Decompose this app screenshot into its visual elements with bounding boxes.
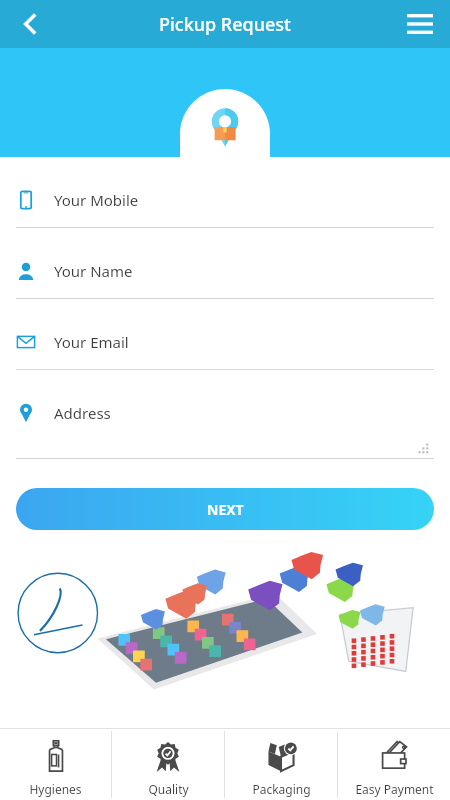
button[interactable]: Easy Payment xyxy=(338,729,450,800)
button[interactable]: Hygienes xyxy=(0,729,111,800)
button[interactable]: NEXT xyxy=(16,488,434,530)
button[interactable]: Packaging xyxy=(225,729,337,800)
button[interactable]: Menu xyxy=(398,2,442,46)
staticText: Packaging xyxy=(252,781,311,797)
staticText: Your Name xyxy=(54,261,133,281)
button[interactable]: Your Email xyxy=(16,327,434,370)
button[interactable]: Address xyxy=(16,398,434,459)
staticText: Easy Payment xyxy=(355,781,434,797)
staticText: Your Email xyxy=(54,332,129,352)
staticText: Quality xyxy=(148,781,189,797)
staticText: Hygienes xyxy=(29,781,82,797)
staticText: Address xyxy=(54,403,111,423)
staticText: NEXT xyxy=(207,500,244,519)
button[interactable]: Your Mobile xyxy=(16,185,434,228)
staticText: Pickup Request xyxy=(159,12,291,37)
button[interactable]: Back xyxy=(8,2,52,46)
button[interactable]: Quality xyxy=(112,729,224,800)
staticText: Your Mobile xyxy=(54,190,139,210)
button[interactable]: Your Name xyxy=(16,256,434,299)
